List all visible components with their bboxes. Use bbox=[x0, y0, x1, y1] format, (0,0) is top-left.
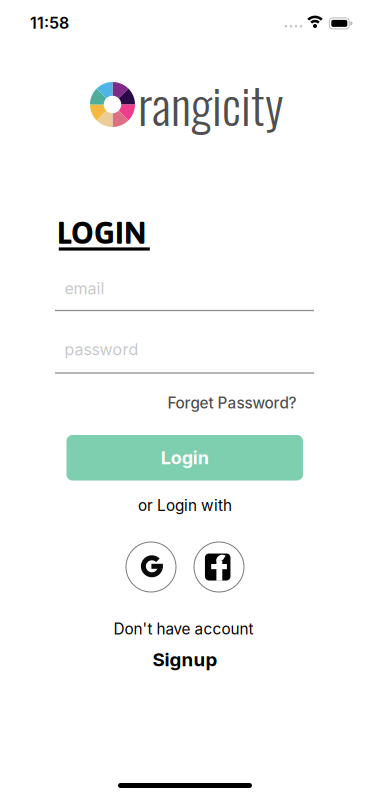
staticText: Don't have account bbox=[113, 620, 253, 638]
staticText: rangicity bbox=[138, 68, 283, 140]
staticText: password bbox=[64, 340, 138, 359]
button[interactable]: Signup bbox=[152, 648, 217, 671]
staticText: or Login with bbox=[138, 496, 232, 515]
staticText: 11:58 bbox=[30, 13, 69, 33]
button[interactable]: Login bbox=[66, 435, 303, 480]
button[interactable]: password bbox=[55, 332, 314, 374]
button[interactable]: Login with Google bbox=[126, 542, 176, 592]
staticText: Signup bbox=[152, 648, 217, 671]
button[interactable]: email bbox=[55, 270, 314, 311]
staticText: email bbox=[64, 279, 104, 298]
button[interactable]: Forget Password? bbox=[167, 394, 296, 412]
staticText: Login bbox=[161, 447, 209, 469]
staticText: LOGIN bbox=[57, 215, 146, 250]
staticText: Forget Password? bbox=[167, 394, 296, 412]
button[interactable]: Login with Facebook bbox=[194, 542, 244, 592]
